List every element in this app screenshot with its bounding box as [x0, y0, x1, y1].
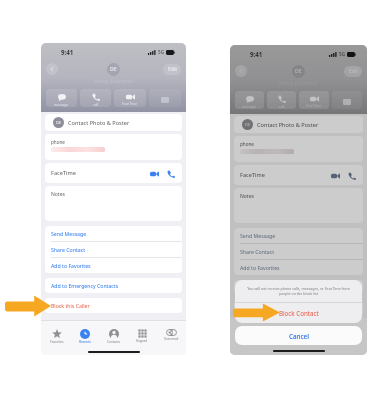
- staticText: 5G: [158, 49, 164, 55]
- staticText: phone: [240, 141, 254, 147]
- button[interactable]: FaceTime video: [330, 170, 341, 181]
- staticText: Voicemail: [164, 337, 179, 341]
- staticText: Keypad: [136, 339, 148, 343]
- button[interactable]: Share Contact: [240, 244, 357, 259]
- staticText: 9:41: [250, 50, 263, 58]
- button[interactable]: FaceTime: [299, 91, 329, 109]
- staticText: Recents: [79, 340, 91, 344]
- staticText: Notes: [240, 193, 254, 200]
- button[interactable]: Edit: [163, 64, 181, 75]
- button[interactable]: FaceTime audio: [165, 168, 176, 179]
- button[interactable]: call: [80, 89, 111, 107]
- button[interactable]: FaceTime audio: [346, 170, 357, 181]
- staticText: Send Message: [51, 230, 87, 237]
- button[interactable]: Add to Favorites: [240, 260, 357, 275]
- staticText: Favorites: [50, 340, 64, 344]
- staticText: Block this Caller: [51, 302, 90, 309]
- staticText: DE: [295, 68, 302, 75]
- button[interactable]: call: [267, 91, 296, 109]
- button[interactable]: Add to Emergency Contacts: [51, 278, 176, 293]
- staticText: Notes: [51, 191, 65, 198]
- staticText: FaceTime: [122, 101, 138, 106]
- button[interactable]: Cancel: [235, 326, 362, 345]
- button[interactable]: Favorites: [44, 321, 70, 347]
- button[interactable]: Mail: [332, 91, 362, 109]
- staticText: 5G: [339, 51, 345, 57]
- staticText: You will not receive phone calls, messag…: [246, 286, 351, 296]
- button[interactable]: Add to Favorites: [51, 258, 176, 273]
- button[interactable]: Send Message: [51, 226, 176, 241]
- button[interactable]: Contacts: [101, 321, 127, 347]
- staticText: Add to Favorites: [240, 264, 280, 271]
- staticText: Add to Favorites: [51, 262, 91, 269]
- button[interactable]: message: [235, 91, 264, 109]
- button[interactable]: DE: [242, 116, 358, 133]
- staticText: FaceTime: [240, 171, 265, 179]
- staticText: message: [242, 104, 257, 109]
- button[interactable]: DE: [53, 114, 177, 131]
- button[interactable]: Block Contact: [235, 303, 362, 323]
- staticText: Edit: [168, 66, 177, 73]
- staticText: Share Contact: [240, 248, 275, 255]
- staticText: Block this Caller: [240, 304, 279, 311]
- button[interactable]: Edit: [344, 66, 362, 77]
- button[interactable]: Share Contact: [51, 242, 176, 257]
- staticText: Share Contact: [51, 246, 86, 253]
- staticText: Send Message: [240, 232, 276, 239]
- staticText: Contact Photo & Poster: [257, 121, 319, 129]
- staticText: 9:41: [61, 48, 74, 56]
- button[interactable]: FaceTime: [114, 89, 146, 107]
- button[interactable]: Add to Emergency Contacts: [240, 280, 357, 295]
- staticText: Add to Emergency Contacts: [240, 284, 308, 291]
- staticText: Cancel: [289, 332, 309, 340]
- staticText: Contacts: [107, 340, 121, 344]
- staticText: Contact Photo & Poster: [68, 119, 130, 127]
- button[interactable]: Recents: [72, 321, 98, 347]
- button[interactable]: Voicemail: [158, 321, 184, 347]
- button[interactable]: Send Message: [240, 228, 357, 243]
- staticText: Edit: [349, 68, 358, 75]
- staticText: call: [93, 102, 99, 107]
- staticText: Add to Emergency Contacts: [51, 282, 119, 289]
- button[interactable]: message: [46, 89, 77, 107]
- staticText: FaceTime: [51, 169, 76, 177]
- staticText: DE: [110, 66, 117, 73]
- button[interactable]: FaceTime video: [149, 168, 160, 179]
- button[interactable]: Mail: [149, 89, 181, 107]
- button[interactable]: Back: [46, 63, 58, 75]
- staticText: FaceTime: [306, 103, 322, 108]
- staticText: phone: [51, 139, 65, 145]
- staticText: message: [54, 102, 69, 107]
- staticText: call: [279, 104, 285, 109]
- button[interactable]: Back: [235, 65, 247, 77]
- staticText: DE: [245, 122, 250, 127]
- staticText: Block Contact: [279, 309, 319, 317]
- staticText: DE: [56, 120, 61, 125]
- button[interactable]: Block this Caller: [51, 298, 176, 313]
- button[interactable]: Keypad: [129, 321, 155, 347]
- button[interactable]: Block this Caller: [240, 300, 357, 315]
